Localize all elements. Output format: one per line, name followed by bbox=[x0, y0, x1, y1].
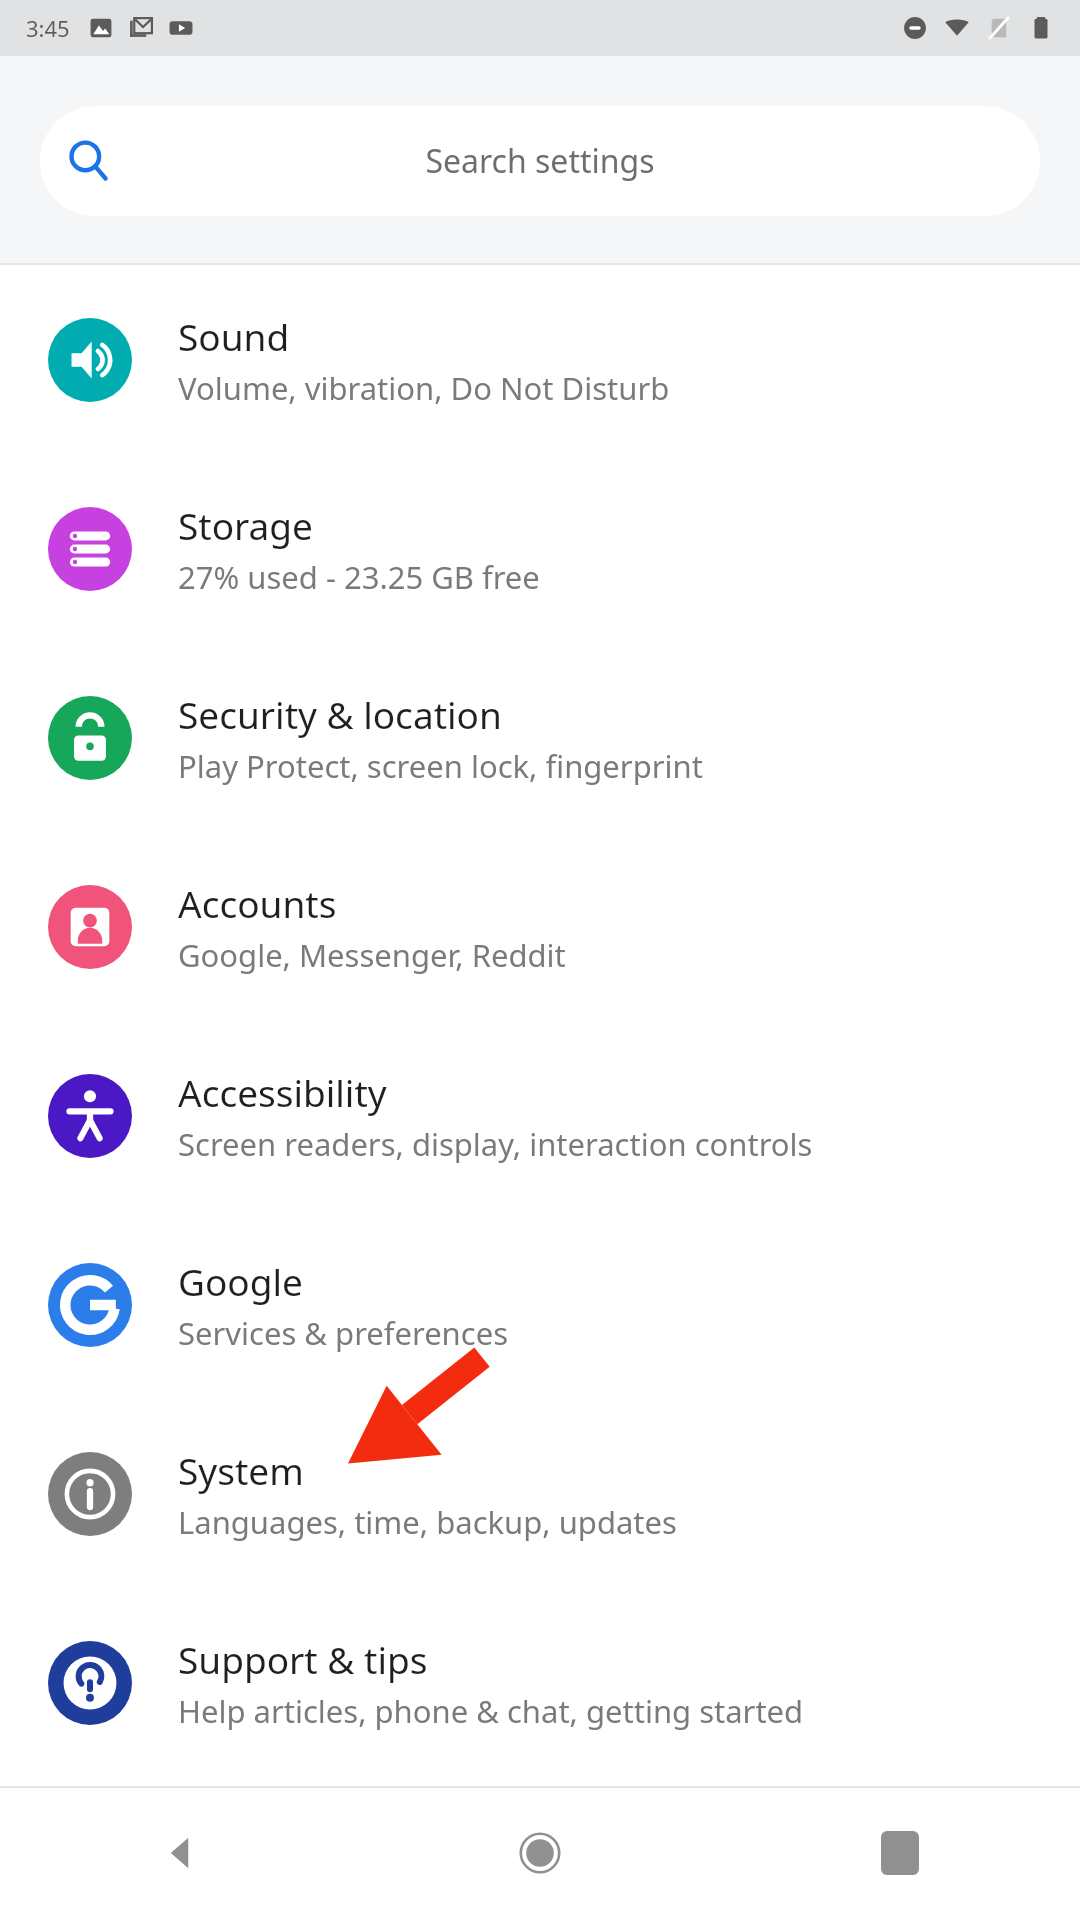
staticText: Storage bbox=[178, 500, 313, 550]
button[interactable]: Search settings bbox=[40, 106, 1040, 216]
staticText: Languages, time, backup, updates bbox=[178, 1501, 677, 1543]
staticText: Google bbox=[178, 1256, 303, 1306]
staticText: 27% used - 23.25 GB free bbox=[178, 556, 540, 598]
staticText: Search settings bbox=[425, 139, 655, 183]
staticText: Support & tips bbox=[178, 1634, 428, 1684]
staticText: Security & location bbox=[178, 689, 502, 739]
button[interactable]: System bbox=[0, 1399, 1080, 1588]
button[interactable]: Storage bbox=[0, 454, 1080, 643]
staticText: Services & preferences bbox=[178, 1312, 508, 1354]
button[interactable]: Recents bbox=[720, 1786, 1080, 1920]
staticText: Help articles, phone & chat, getting sta… bbox=[178, 1690, 804, 1732]
staticText: Volume, vibration, Do Not Disturb bbox=[178, 367, 670, 409]
other: Search bbox=[66, 138, 112, 184]
staticText: Accounts bbox=[178, 878, 337, 928]
button[interactable]: Support & tips bbox=[0, 1588, 1080, 1777]
staticText: Google, Messenger, Reddit bbox=[178, 934, 566, 976]
staticText: Screen readers, display, interaction con… bbox=[178, 1123, 813, 1165]
button[interactable]: Home bbox=[360, 1786, 720, 1920]
staticText: System bbox=[178, 1445, 304, 1495]
button[interactable]: Accessibility bbox=[0, 1021, 1080, 1210]
staticText: Sound bbox=[178, 311, 290, 361]
button[interactable]: Security & location bbox=[0, 643, 1080, 832]
button[interactable]: Sound bbox=[0, 265, 1080, 454]
button[interactable]: Google bbox=[0, 1210, 1080, 1399]
staticText: 3:45 bbox=[26, 13, 70, 43]
button[interactable]: Back bbox=[0, 1786, 360, 1920]
staticText: Accessibility bbox=[178, 1067, 387, 1117]
button[interactable]: Accounts bbox=[0, 832, 1080, 1021]
staticText: Play Protect, screen lock, fingerprint bbox=[178, 745, 703, 787]
